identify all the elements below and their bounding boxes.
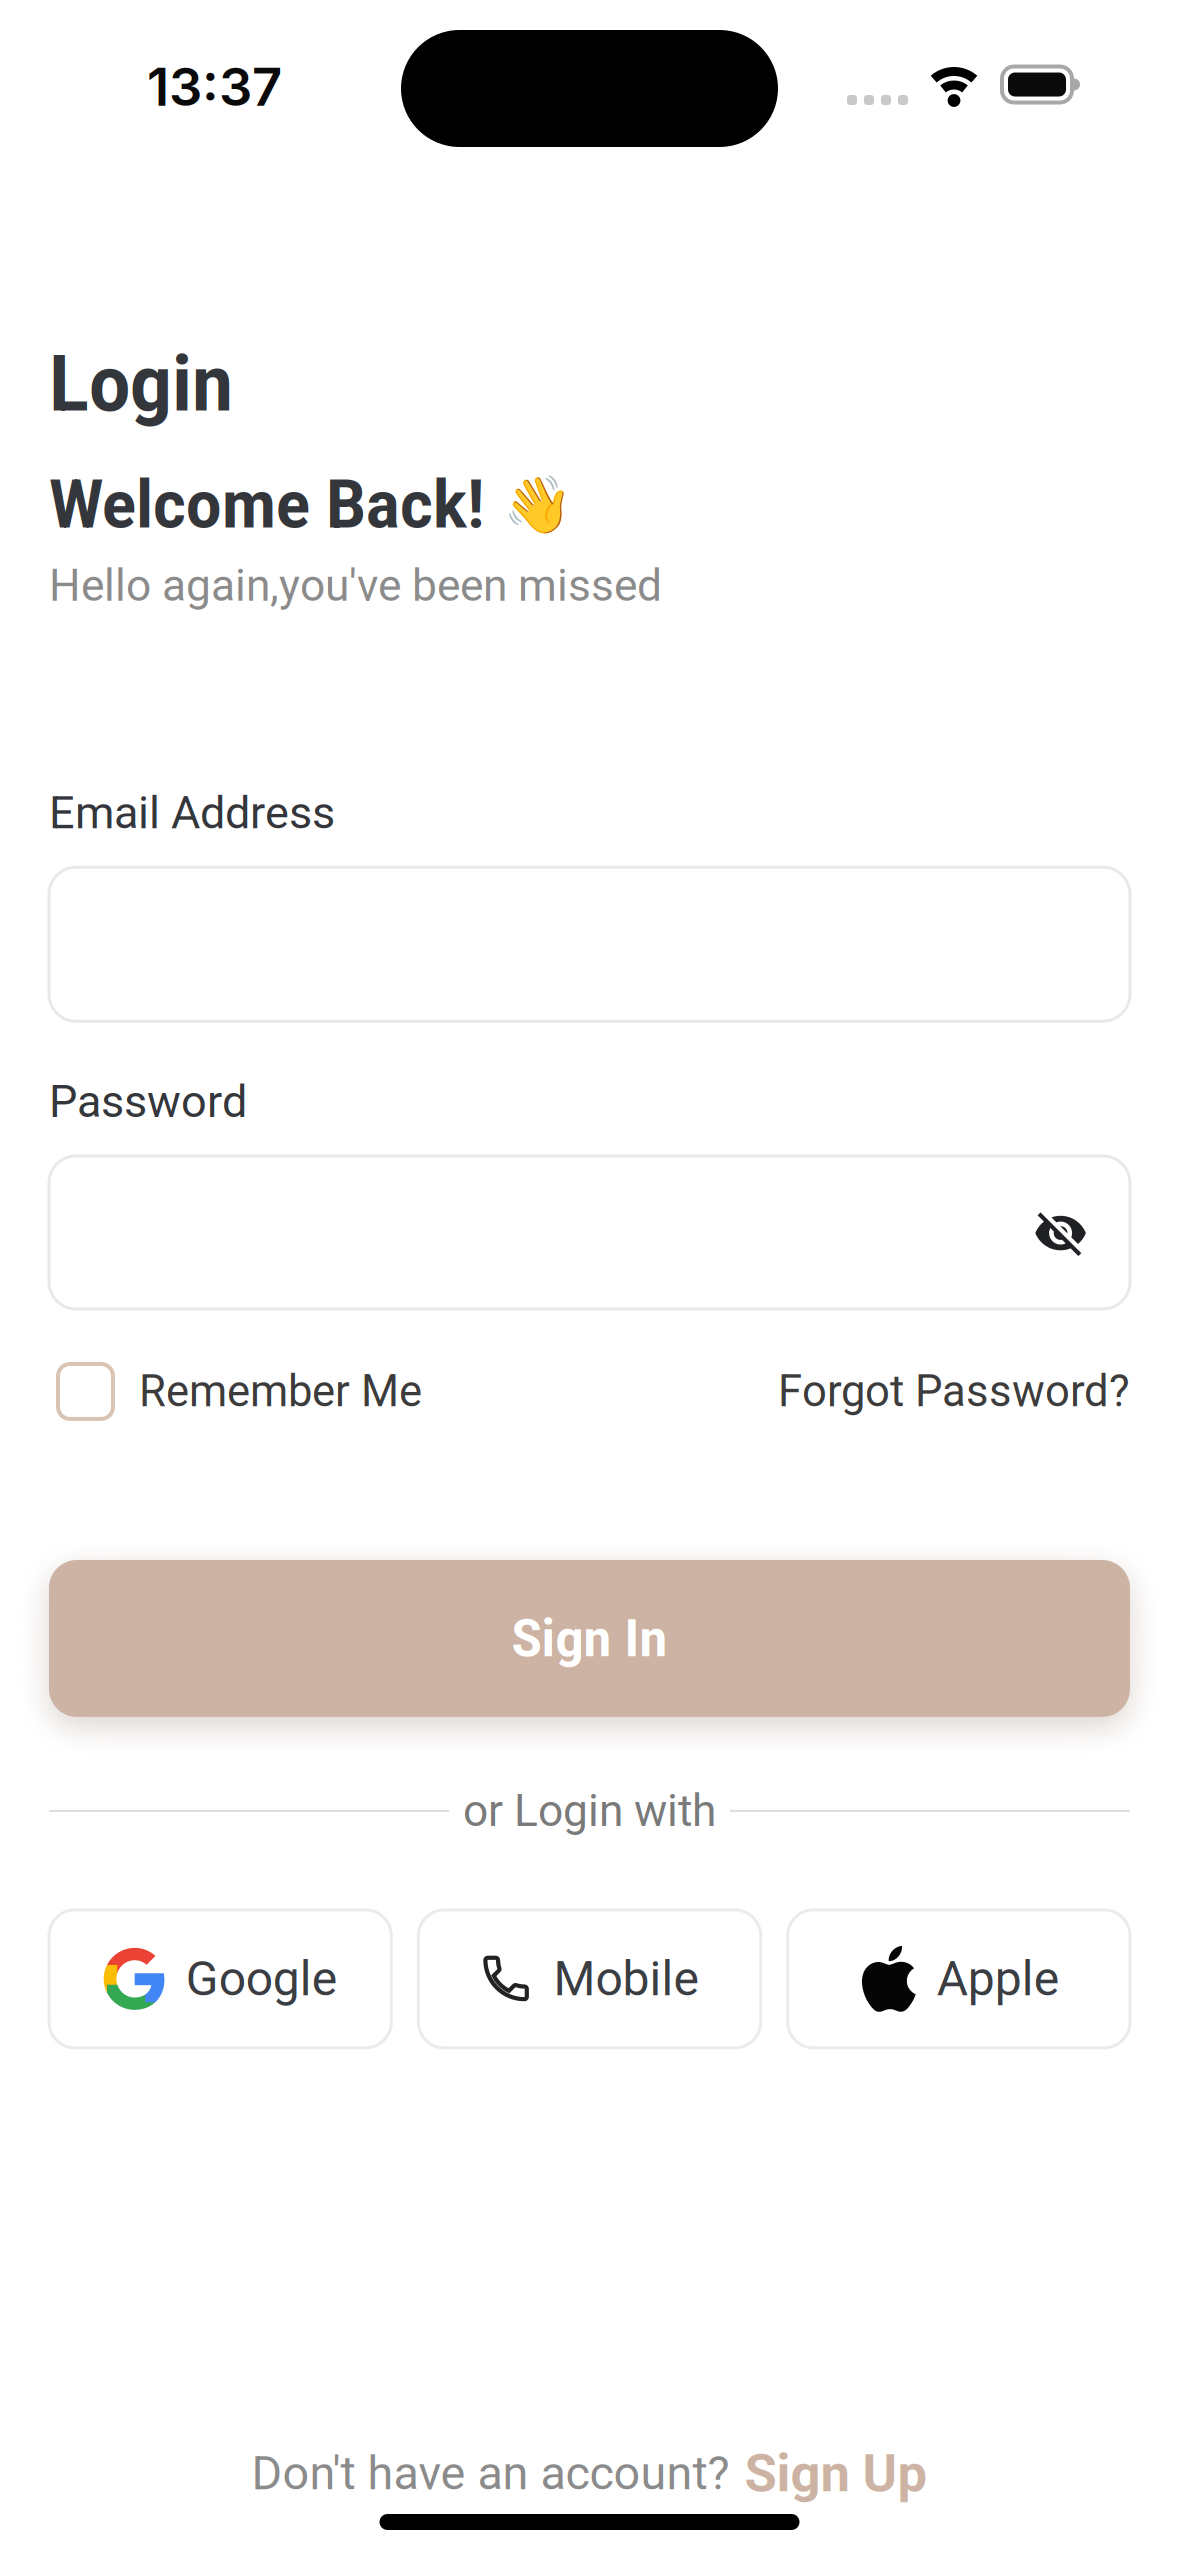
staticText: Login [49,339,233,429]
button[interactable]: Google [49,1910,391,2048]
staticText: or Login with [463,1785,716,1837]
staticText: 👋 [503,472,573,538]
staticText: Sign Up [744,2442,927,2504]
button[interactable]: Apple [788,1910,1130,2048]
staticText: Mobile [553,1951,698,2007]
staticText: 13:37 [147,55,282,118]
staticText: Apple [937,1951,1059,2007]
staticText: Google [186,1951,337,2007]
button[interactable]: Show password [1034,1208,1130,1256]
staticText: Forgot Password? [778,1366,1130,1417]
staticText: Password [49,1075,247,1128]
button[interactable]: Email Address [49,867,1130,1021]
button[interactable]: Mobile [418,1910,761,2048]
staticText: Don't have an account? [251,2446,729,2501]
button[interactable]: Password [49,1156,1130,1309]
button[interactable]: Remember Me [58,1364,422,1419]
staticText: Welcome Back! [49,466,485,543]
button[interactable]: Sign Up [744,2442,927,2504]
staticText: Remember Me [139,1366,422,1417]
staticText: Email Address [49,786,335,839]
button[interactable]: Forgot Password? [778,1366,1130,1417]
staticText: Sign In [511,1608,667,1669]
staticText: Hello again,you've been missed [49,560,662,611]
button[interactable]: Sign In [49,1560,1130,1717]
